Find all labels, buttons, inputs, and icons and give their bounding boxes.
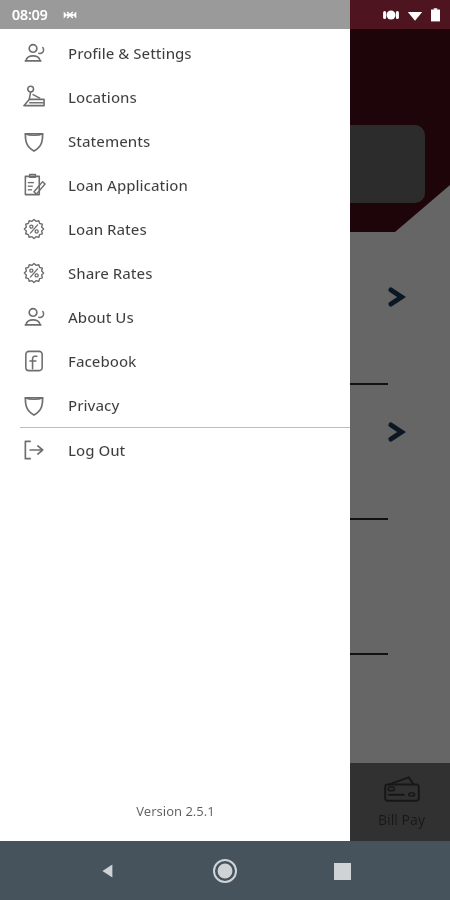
button[interactable] bbox=[0, 655, 450, 790]
button[interactable]: Profile & Settings bbox=[0, 31, 350, 75]
staticText: Loan Rates bbox=[68, 219, 147, 239]
staticText: Log Out bbox=[68, 440, 126, 460]
staticText: Statements bbox=[68, 131, 151, 151]
button[interactable]: Available Balance Locked bbox=[120, 125, 425, 203]
button[interactable]: Home bbox=[205, 851, 245, 891]
button[interactable]: Loan Rates bbox=[0, 207, 350, 251]
button[interactable]: Privacy bbox=[0, 383, 350, 427]
button[interactable] bbox=[0, 385, 450, 520]
button[interactable]: Loan Application bbox=[0, 163, 350, 207]
staticText: Share Rates bbox=[68, 263, 153, 283]
staticText: Version 2.5.1 bbox=[136, 802, 215, 820]
staticText: Facebook bbox=[68, 351, 137, 371]
staticText: About Us bbox=[68, 307, 134, 327]
button[interactable]: Back bbox=[88, 851, 128, 891]
staticText: Privacy bbox=[68, 395, 120, 415]
staticText: Profile & Settings bbox=[68, 43, 192, 63]
button[interactable]: Bill Pay bbox=[354, 763, 450, 841]
staticText: 08:09 bbox=[12, 5, 48, 24]
button[interactable]: About Us bbox=[0, 295, 350, 339]
button[interactable]: Share Rates bbox=[0, 251, 350, 295]
staticText: Loan Application bbox=[68, 175, 188, 195]
button[interactable]: Recent apps bbox=[322, 851, 362, 891]
button[interactable]: Statements bbox=[0, 119, 350, 163]
button[interactable] bbox=[0, 520, 450, 655]
staticText: Locations bbox=[68, 87, 137, 107]
staticText: Bill Pay bbox=[378, 810, 426, 829]
button[interactable] bbox=[0, 250, 450, 385]
button[interactable]: Locations bbox=[0, 75, 350, 119]
button[interactable]: Log Out bbox=[0, 428, 350, 472]
button[interactable]: Facebook bbox=[0, 339, 350, 383]
